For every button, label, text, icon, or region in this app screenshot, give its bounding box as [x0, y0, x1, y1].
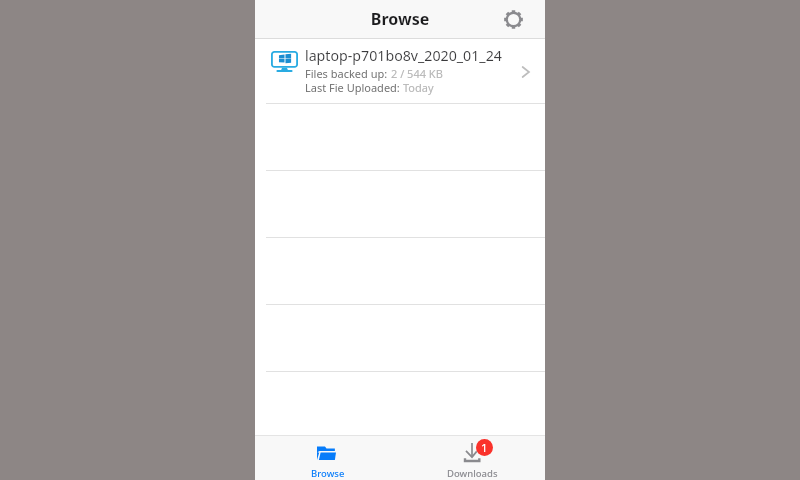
button[interactable]: Browse: [255, 435, 400, 480]
staticText: Browse: [255, 8, 545, 30]
button[interactable]: Settings: [500, 6, 526, 32]
staticText: Files backed up:: [305, 66, 391, 81]
button[interactable]: laptop-p701bo8v_2020_01_24: [255, 39, 545, 104]
staticText: 2 / 544 KB: [391, 66, 443, 81]
staticText: Last Fie Uploaded:: [305, 80, 403, 95]
staticText: 1: [481, 440, 488, 456]
staticText: Downloads: [447, 467, 498, 480]
button[interactable]: 1: [400, 435, 545, 480]
staticText: laptop-p701bo8v_2020_01_24: [305, 46, 502, 65]
staticText: Today: [403, 80, 434, 95]
staticText: Browse: [311, 467, 345, 480]
